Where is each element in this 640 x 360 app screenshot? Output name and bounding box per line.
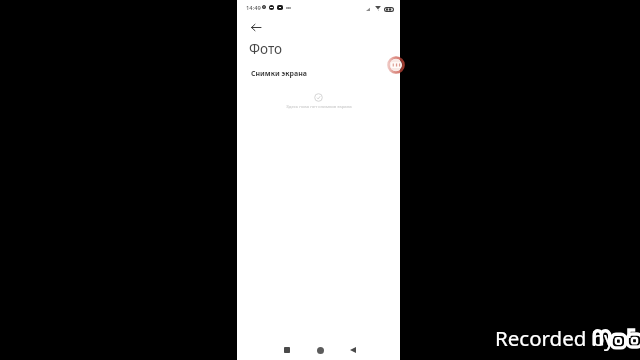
staticText: Здесь пока нет снимков экрана (286, 103, 352, 109)
staticText: 14:49 (246, 4, 261, 12)
staticText: Фото (249, 40, 283, 58)
staticText: Снимки экрана (251, 69, 307, 79)
button[interactable]: Home (312, 342, 328, 358)
button[interactable]: Back (249, 21, 263, 33)
button[interactable]: Back (345, 342, 361, 358)
button[interactable]: Recents (279, 342, 295, 358)
staticText: Recorded by (495, 324, 615, 352)
